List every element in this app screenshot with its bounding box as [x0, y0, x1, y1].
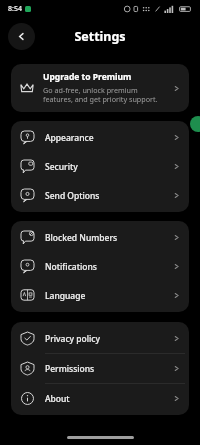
staticText: Permissions	[45, 363, 173, 375]
button[interactable]: Permissions	[11, 354, 189, 383]
staticText: Go ad-free, unlock premium features, and…	[43, 85, 169, 105]
button[interactable]: Privacy policy	[11, 324, 189, 353]
button[interactable]: Security	[11, 152, 189, 181]
button[interactable]: Chat	[190, 116, 200, 132]
staticText: Send Options	[45, 190, 173, 202]
staticText: Blocked Numbers	[45, 232, 173, 244]
button[interactable]: Send Options	[11, 181, 189, 210]
staticText: Upgrade to Premium	[43, 71, 132, 83]
staticText: Notifications	[45, 261, 173, 273]
staticText: Privacy policy	[45, 333, 173, 345]
button[interactable]: About	[11, 384, 189, 413]
button[interactable]: Upgrade to Premium	[11, 64, 189, 112]
button[interactable]: Appearance	[11, 123, 189, 152]
button[interactable]: Notifications	[11, 252, 189, 281]
staticText: Settings	[74, 28, 126, 45]
staticText: Language	[45, 290, 173, 302]
button[interactable]: Back	[8, 23, 35, 50]
staticText: Security	[45, 161, 173, 173]
button[interactable]: Language	[11, 281, 189, 310]
button[interactable]: Blocked Numbers	[11, 223, 189, 252]
staticText: Appearance	[45, 132, 173, 144]
staticText: 8:54	[8, 4, 22, 14]
staticText: About	[45, 393, 173, 405]
